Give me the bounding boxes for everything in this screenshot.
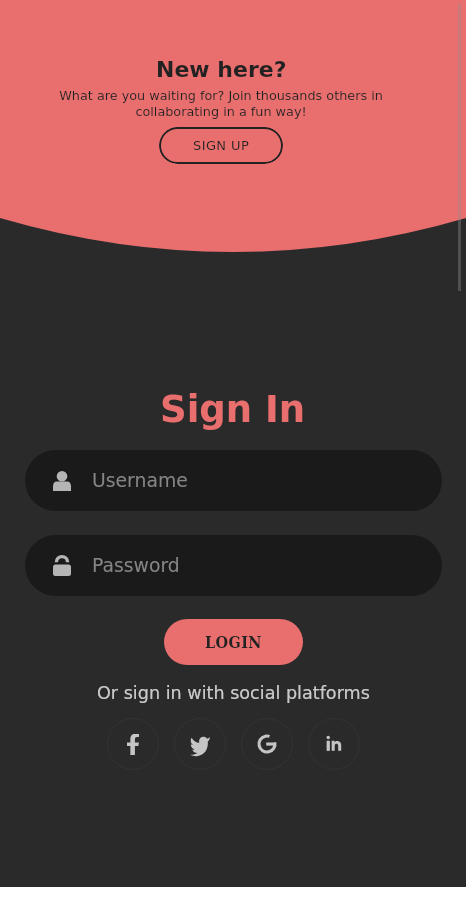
staticText: Or sign in with social platforms bbox=[97, 683, 370, 703]
button[interactable]: Username bbox=[25, 450, 442, 511]
staticText: Sign In bbox=[160, 388, 306, 431]
staticText: Username bbox=[92, 470, 188, 492]
staticText: What are you waiting for? Join thousands… bbox=[51, 88, 391, 119]
staticText: Password bbox=[92, 555, 180, 577]
button[interactable]: Facebook bbox=[107, 718, 159, 770]
staticText: LOGIN bbox=[205, 633, 262, 652]
button[interactable]: Google bbox=[241, 718, 293, 770]
staticText: SIGN UP bbox=[193, 138, 250, 153]
button[interactable]: LinkedIn bbox=[308, 718, 360, 770]
button[interactable]: Password bbox=[25, 535, 442, 596]
button[interactable]: LOGIN bbox=[164, 619, 303, 665]
button[interactable]: Twitter bbox=[174, 718, 226, 770]
staticText: New here? bbox=[156, 57, 287, 83]
button[interactable]: SIGN UP bbox=[159, 127, 283, 164]
